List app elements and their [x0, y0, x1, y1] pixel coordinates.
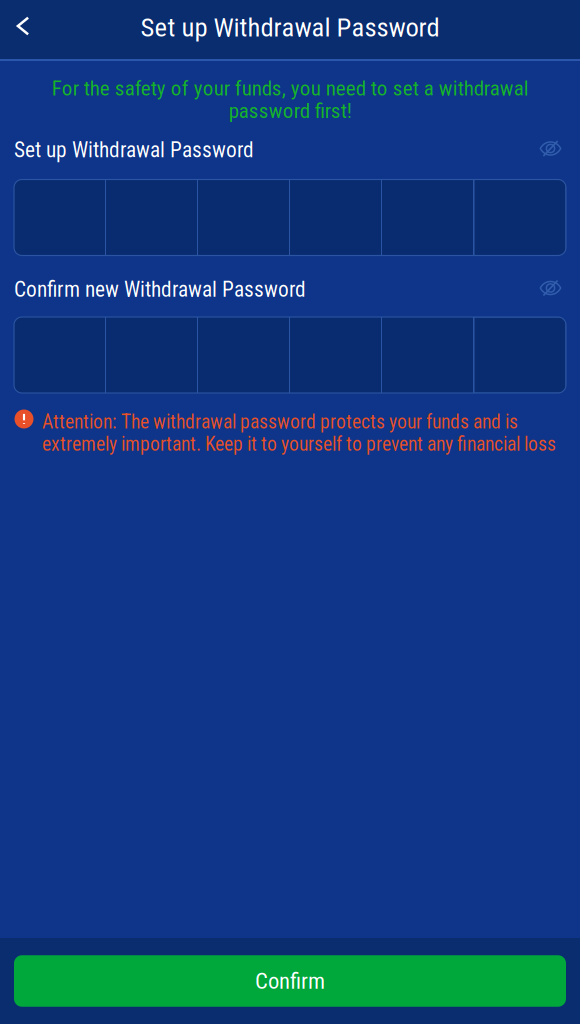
staticText: Attention: The withdrawal password prote…: [42, 410, 556, 455]
staticText: Set up Withdrawal Password: [140, 12, 439, 43]
staticText: For the safety of your funds, you need t…: [51, 76, 528, 123]
staticText: Confirm new Withdrawal Password: [14, 277, 306, 302]
button[interactable]: Confirm: [14, 955, 566, 1007]
button[interactable]: Show confirm withdrawal password: [533, 274, 567, 302]
button[interactable]: Show withdrawal password: [533, 134, 567, 162]
staticText: Set up Withdrawal Password: [14, 137, 254, 162]
staticText: Confirm: [255, 968, 325, 994]
button[interactable]: Back: [0, 5, 46, 47]
